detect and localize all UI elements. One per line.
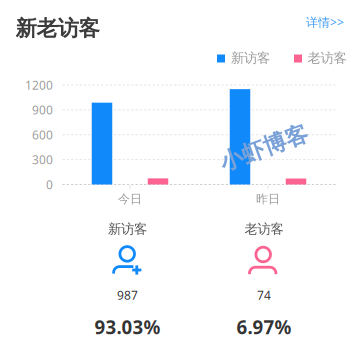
staticText: 今日	[118, 192, 142, 206]
staticText: 600	[32, 127, 53, 143]
staticText: 900	[32, 102, 53, 118]
staticText: 74	[257, 287, 271, 303]
staticText: 新老访客	[15, 15, 99, 42]
staticText: 详情>>	[306, 14, 344, 30]
staticText: 新访客	[108, 221, 147, 237]
staticText: 昨日	[256, 192, 280, 206]
staticText: 300	[32, 152, 53, 168]
staticText: 小虾博客	[218, 134, 310, 162]
staticText: 1200	[25, 77, 53, 93]
staticText: 93.03%	[95, 315, 161, 339]
staticText: 0	[46, 176, 53, 192]
staticText: 老访客	[244, 221, 283, 237]
staticText: 老访客	[307, 50, 346, 66]
staticText: 987	[117, 287, 138, 303]
staticText: 6.97%	[236, 315, 291, 339]
staticText: 新访客	[231, 50, 270, 66]
button[interactable]: 详情>>	[302, 11, 348, 33]
